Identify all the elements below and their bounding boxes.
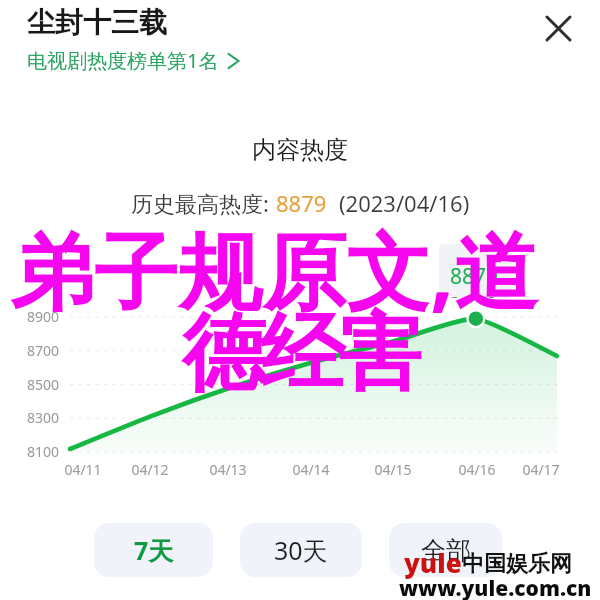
staticText: 04/13 — [204, 460, 252, 479]
staticText: (2023/04/16) — [339, 188, 470, 218]
staticText: 04/16 — [450, 291, 496, 298]
staticText: 内容热度 — [252, 135, 348, 165]
button[interactable]: 30天 — [240, 523, 362, 577]
staticText: 8100 — [26, 442, 60, 461]
staticText: 04/17 — [517, 460, 565, 479]
staticText: 04/11 — [59, 460, 107, 479]
staticText: 全部 — [421, 535, 471, 566]
staticText: 04/12 — [126, 460, 174, 479]
staticText: 8900 — [26, 307, 60, 326]
staticText: www.yule.com.cn — [399, 574, 592, 600]
staticText: 8500 — [26, 375, 60, 394]
staticText: 8700 — [26, 341, 60, 360]
button[interactable]: Close — [540, 10, 576, 46]
staticText: 04/16 — [453, 460, 501, 479]
staticText: 中国娱乐网 — [462, 550, 572, 578]
button[interactable]: 7天 — [94, 523, 213, 577]
button[interactable]: 全部 — [389, 523, 502, 577]
staticText: 历史最高热度: — [131, 188, 269, 218]
staticText: 8300 — [26, 408, 60, 427]
staticText: yule — [404, 545, 462, 580]
button[interactable]: 电视剧热度榜单第1名 — [27, 47, 239, 74]
staticText: 30天 — [274, 533, 328, 567]
staticText: 8879 — [450, 262, 499, 291]
staticText: 德经害 — [185, 301, 419, 407]
staticText: 04/14 — [287, 460, 335, 479]
staticText: 7天 — [134, 533, 174, 567]
staticText: 电视剧热度榜单第1名 — [27, 47, 219, 74]
staticText: 04/15 — [369, 460, 417, 479]
staticText: 尘封十三载 — [27, 5, 167, 40]
staticText: 弟子规原文,道 — [10, 212, 538, 327]
staticText: 8879 — [276, 188, 327, 218]
